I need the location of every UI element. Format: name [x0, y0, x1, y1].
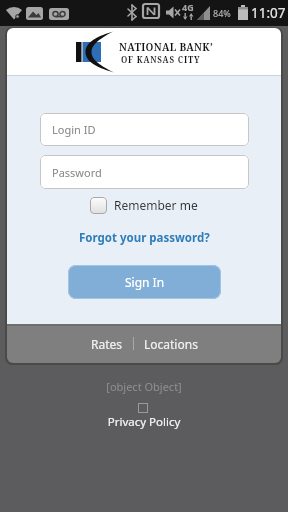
staticText: Locations	[144, 336, 198, 352]
staticText: OF KANSAS CITY	[121, 54, 201, 65]
staticText: Sign In	[125, 274, 165, 290]
staticText: [object Object]	[0, 379, 288, 394]
button[interactable]: Locations	[138, 332, 204, 356]
staticText: 4G	[182, 1, 194, 13]
button[interactable]: Password	[40, 155, 249, 189]
button[interactable]: Sign In	[68, 265, 221, 299]
staticText: Login ID	[52, 122, 96, 137]
button[interactable]: Forgot your password?	[79, 230, 210, 246]
staticText: Rates	[91, 336, 123, 352]
staticText: Remember me	[114, 197, 198, 213]
staticText: 84%	[213, 7, 231, 19]
button[interactable]: Login ID	[40, 113, 249, 146]
staticText: NATIONAL BANK’	[119, 40, 214, 54]
staticText: 11:07	[251, 4, 286, 22]
button[interactable]: Privacy Policy	[0, 414, 288, 430]
button[interactable]: Remember me	[90, 196, 198, 214]
button[interactable]	[138, 403, 148, 413]
staticText: Password	[52, 165, 102, 180]
button[interactable]: Rates	[85, 332, 129, 356]
